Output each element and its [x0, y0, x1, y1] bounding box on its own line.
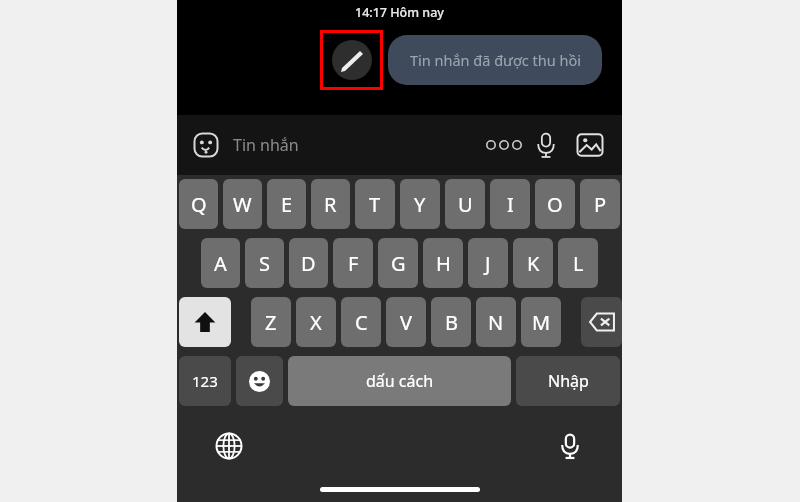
- staticText: J: [485, 250, 491, 277]
- staticText: H: [436, 250, 451, 277]
- staticText: S: [259, 250, 270, 277]
- button[interactable]: Stickers: [189, 128, 223, 162]
- button[interactable]: D: [289, 238, 328, 288]
- staticText: dấu cách: [366, 370, 434, 392]
- button[interactable]: R: [311, 179, 350, 229]
- staticText: I: [507, 191, 514, 218]
- staticText: 14:17 Hôm nay: [355, 4, 444, 21]
- button[interactable]: Send photo: [568, 123, 612, 167]
- button[interactable]: K: [513, 238, 553, 288]
- staticText: Y: [414, 191, 426, 218]
- staticText: K: [527, 250, 540, 277]
- button[interactable]: S: [245, 238, 284, 288]
- staticText: C: [355, 309, 368, 336]
- button[interactable]: G: [378, 238, 418, 288]
- button[interactable]: B: [431, 297, 471, 347]
- button[interactable]: Tin nhắn đã được thu hồi: [388, 35, 602, 85]
- staticText: X: [310, 309, 322, 336]
- button[interactable]: Y: [400, 179, 440, 229]
- staticText: T: [369, 191, 381, 218]
- staticText: F: [348, 250, 359, 277]
- staticText: N: [488, 309, 504, 336]
- staticText: R: [324, 191, 337, 218]
- button[interactable]: Edit: [332, 40, 372, 80]
- button[interactable]: M: [521, 297, 561, 347]
- button[interactable]: Z: [251, 297, 291, 347]
- staticText: E: [281, 191, 293, 218]
- button[interactable]: More options: [484, 125, 524, 165]
- button[interactable]: Dictate: [548, 424, 592, 468]
- staticText: D: [301, 250, 316, 277]
- button[interactable]: P: [580, 179, 620, 229]
- button[interactable]: H: [423, 238, 463, 288]
- button[interactable]: J: [468, 238, 508, 288]
- staticText: Nhập: [548, 370, 589, 392]
- staticText: M: [532, 309, 551, 336]
- staticText: V: [400, 309, 412, 336]
- button[interactable]: I: [490, 179, 530, 229]
- button[interactable]: C: [341, 297, 381, 347]
- staticText: W: [233, 191, 252, 218]
- button[interactable]: O: [535, 179, 575, 229]
- button[interactable]: A: [201, 238, 240, 288]
- button[interactable]: V: [386, 297, 426, 347]
- button[interactable]: L: [558, 238, 598, 288]
- staticText: G: [391, 250, 406, 277]
- button[interactable]: 123: [179, 356, 231, 406]
- button[interactable]: Shift: [179, 297, 231, 347]
- button[interactable]: Q: [179, 179, 218, 229]
- button[interactable]: T: [355, 179, 395, 229]
- staticText: Q: [191, 191, 207, 218]
- button[interactable]: Emoji: [236, 356, 283, 406]
- staticText: Tin nhắn đã được thu hồi: [410, 50, 581, 70]
- staticText: Z: [265, 309, 277, 336]
- staticText: P: [594, 191, 607, 218]
- staticText: B: [445, 309, 458, 336]
- staticText: L: [573, 250, 584, 277]
- button[interactable]: Change keyboard: [207, 424, 251, 468]
- staticText: O: [547, 191, 563, 218]
- button[interactable]: F: [333, 238, 373, 288]
- staticText: U: [458, 191, 473, 218]
- button[interactable]: Voice message: [524, 123, 568, 167]
- button[interactable]: Backspace: [581, 297, 622, 347]
- staticText: Tin nhắn: [233, 134, 484, 156]
- staticText: 123: [192, 371, 218, 391]
- button[interactable]: N: [476, 297, 516, 347]
- button[interactable]: E: [267, 179, 306, 229]
- staticText: A: [214, 250, 227, 277]
- button[interactable]: Nhập: [516, 356, 620, 406]
- button[interactable]: dấu cách: [288, 356, 511, 406]
- button[interactable]: X: [296, 297, 336, 347]
- button[interactable]: W: [223, 179, 262, 229]
- button[interactable]: U: [445, 179, 485, 229]
